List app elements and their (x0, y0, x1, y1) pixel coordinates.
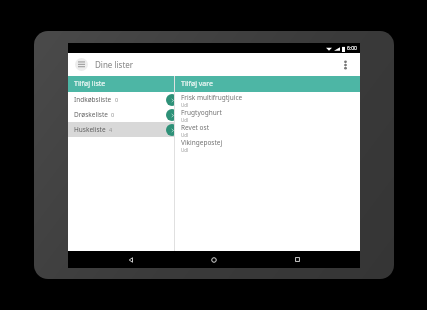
staticText: 4 (109, 126, 113, 133)
button[interactable]: Revet ost (175, 122, 360, 137)
staticText: Drøskeliste (74, 110, 108, 119)
button[interactable]: Tilføj vare (175, 76, 360, 92)
button[interactable]: Back (111, 251, 151, 268)
staticText: Huskeliste (74, 125, 106, 134)
button[interactable]: Open Drøskeliste (166, 109, 178, 121)
button[interactable]: Open navigation drawer (75, 58, 88, 71)
button[interactable]: Huskeliste (68, 122, 174, 137)
button[interactable]: Indkøbsliste (68, 92, 174, 107)
staticText: Tilføj vare (181, 79, 213, 89)
staticText: Vikingepostej (181, 138, 223, 147)
button[interactable]: Recent apps (277, 251, 317, 268)
button[interactable]: Drøskeliste (68, 107, 174, 122)
staticText: Dine lister (95, 59, 134, 70)
button[interactable]: Tilføj liste (68, 76, 174, 92)
staticText: Frisk multifrugtjuice (181, 93, 243, 102)
staticText: Udl (181, 147, 189, 152)
staticText: Udl (181, 102, 189, 107)
staticText: Udl (181, 132, 189, 137)
button[interactable]: More options (337, 57, 353, 73)
staticText: 0 (115, 96, 119, 103)
staticText: 0 (111, 111, 115, 118)
staticText: Indkøbsliste (74, 95, 112, 104)
button[interactable]: Open Indkøbsliste (166, 94, 178, 106)
staticText: Revet ost (181, 123, 209, 132)
button[interactable]: Vikingepostej (175, 137, 360, 152)
button[interactable]: Frugtyoghurt (175, 107, 360, 122)
button[interactable]: Frisk multifrugtjuice (175, 92, 360, 107)
button[interactable]: Home (194, 251, 234, 268)
staticText: Frugtyoghurt (181, 108, 222, 117)
staticText: 6:00 (347, 45, 357, 52)
staticText: Tilføj liste (74, 79, 106, 89)
staticText: Udl (181, 117, 189, 122)
button[interactable]: Open Huskeliste (166, 124, 178, 136)
